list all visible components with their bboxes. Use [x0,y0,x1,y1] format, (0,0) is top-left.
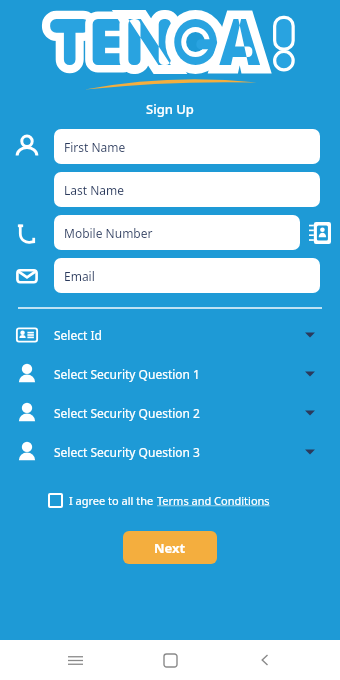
staticText: Email [64,268,95,284]
staticText: Select Security Question 2 [54,405,200,421]
button[interactable]: Select Security Question 2 [0,400,340,426]
button[interactable]: Pick from contacts [300,215,340,250]
button[interactable]: Home [150,640,190,680]
staticText: Last Name [64,182,125,198]
button[interactable]: Recents [55,640,95,680]
button[interactable]: I agree to all the [0,487,340,513]
button[interactable]: Mobile Number [54,215,300,250]
button[interactable]: Back [245,640,285,680]
button[interactable]: Email [54,258,320,293]
button[interactable]: Next [123,531,217,564]
staticText: Select Security Question 1 [54,366,200,382]
staticText: I agree to all the [69,493,157,508]
button[interactable]: First Name [54,129,320,164]
button[interactable]: Select Id [0,322,340,348]
staticText: Select Security Question 3 [54,444,200,460]
staticText: Sign Up [146,100,194,118]
button[interactable]: Select Security Question 1 [0,361,340,387]
staticText: Select Id [54,327,102,343]
staticText: First Name [64,139,126,155]
staticText: Mobile Number [64,225,153,241]
button[interactable]: Last Name [54,172,320,207]
staticText: Terms and Conditions [157,493,270,508]
staticText: Next [154,539,186,557]
button[interactable]: Select Security Question 3 [0,439,340,465]
